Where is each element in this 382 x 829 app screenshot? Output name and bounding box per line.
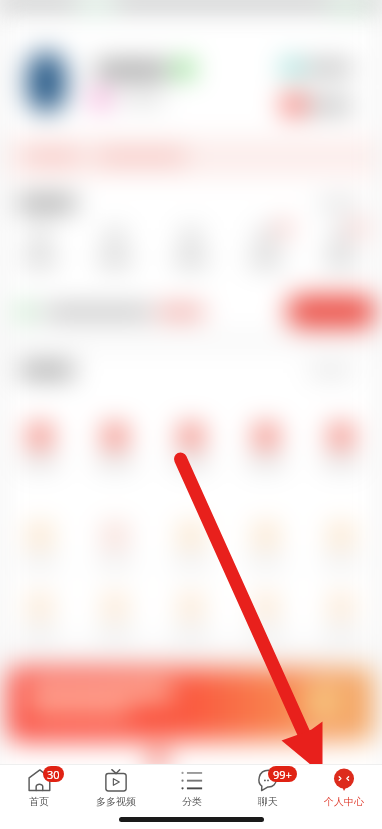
button[interactable]: 99+ [230,764,306,808]
staticText: 个人中心 [324,795,364,808]
button[interactable]: 个人中心 [306,764,382,808]
staticText: 30 [47,767,60,782]
staticText: 多多视频 [96,795,136,808]
staticText: 分类 [182,795,202,808]
button[interactable]: 分类 [154,764,230,808]
staticText: 99+ [273,767,292,782]
staticText: 聊天 [258,795,278,808]
staticText: 首页 [29,795,49,808]
button[interactable]: 多多视频 [77,764,154,808]
button[interactable]: 30 [0,764,77,808]
